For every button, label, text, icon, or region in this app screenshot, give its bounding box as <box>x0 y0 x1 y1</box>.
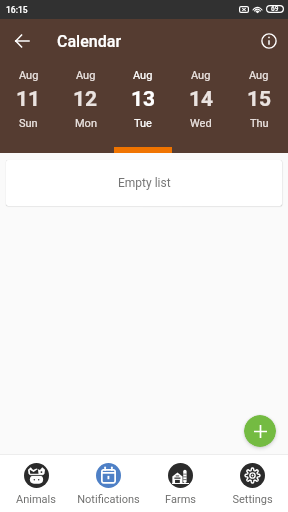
staticText: Aug <box>19 69 39 82</box>
staticText: Wed <box>190 117 212 130</box>
staticText: Settings <box>232 493 273 506</box>
staticText: 12 <box>73 87 98 112</box>
staticText: Empty list <box>118 176 171 190</box>
button[interactable]: Animals <box>0 454 72 512</box>
button[interactable]: Info <box>250 22 288 60</box>
button[interactable]: Aug <box>230 63 288 153</box>
staticText: Aug <box>133 69 153 82</box>
button[interactable]: Notifications <box>72 454 144 512</box>
button[interactable]: Farms <box>144 454 216 512</box>
button[interactable]: Add <box>244 415 276 447</box>
button[interactable]: Aug <box>0 63 57 153</box>
staticText: Aug <box>76 69 96 82</box>
staticText: Farms <box>165 493 196 506</box>
staticText: Tue <box>134 117 152 130</box>
staticText: Notifications <box>77 493 140 506</box>
button[interactable]: Back <box>0 19 44 63</box>
staticText: Aug <box>249 69 269 82</box>
staticText: Mon <box>75 117 97 130</box>
staticText: 69 <box>271 5 279 13</box>
staticText: 15 <box>247 87 272 112</box>
staticText: 11 <box>16 87 41 112</box>
staticText: Thu <box>250 117 269 130</box>
staticText: Calendar <box>57 32 122 51</box>
staticText: 16:15 <box>6 5 28 15</box>
staticText: 13 <box>131 87 156 112</box>
button[interactable]: Aug <box>114 63 172 153</box>
staticText: Aug <box>191 69 211 82</box>
button[interactable]: Settings <box>216 454 288 512</box>
button[interactable]: Aug <box>57 63 114 153</box>
staticText: Sun <box>19 117 38 130</box>
staticText: Animals <box>16 493 56 506</box>
staticText: 14 <box>189 87 214 112</box>
button[interactable]: Empty list <box>6 160 282 206</box>
button[interactable]: Aug <box>172 63 230 153</box>
